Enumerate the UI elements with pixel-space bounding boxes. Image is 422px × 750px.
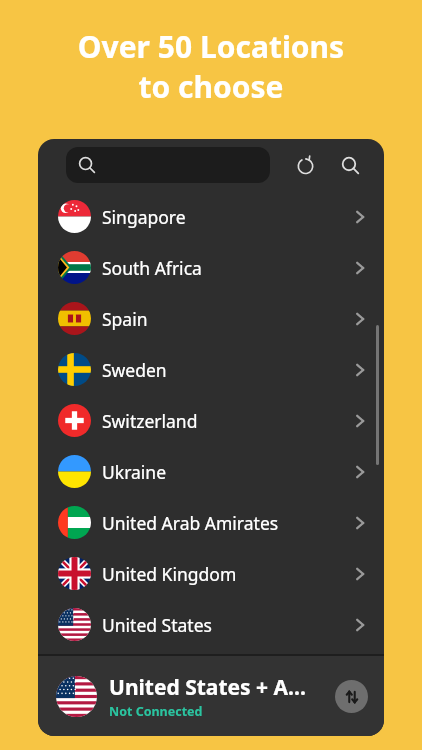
button[interactable]: Singapore <box>38 191 384 242</box>
staticText: United Arab Amirates <box>102 511 350 535</box>
button[interactable]: United Arab Amirates <box>38 497 384 548</box>
button[interactable]: Spain <box>38 293 384 344</box>
button[interactable]: Sweden <box>38 344 384 395</box>
button[interactable] <box>66 147 270 183</box>
button[interactable]: United Kingdom <box>38 548 384 599</box>
button[interactable]: United States + A... <box>38 656 384 736</box>
staticText: South Africa <box>102 256 350 280</box>
staticText: Singapore <box>102 205 350 229</box>
button[interactable]: Ukraine <box>38 446 384 497</box>
staticText: Switzerland <box>102 409 350 433</box>
staticText: Over 50 Locations to choose <box>20 26 402 107</box>
staticText: United Kingdom <box>102 562 350 586</box>
button[interactable]: Refresh <box>288 148 322 182</box>
button[interactable]: United States <box>38 599 384 650</box>
staticText: Ukraine <box>102 460 350 484</box>
button[interactable]: Switch connection <box>335 680 368 713</box>
button[interactable]: Switzerland <box>38 395 384 446</box>
staticText: Sweden <box>102 358 350 382</box>
staticText: United States + A... <box>109 673 306 702</box>
staticText: Spain <box>102 307 350 331</box>
button[interactable]: South Africa <box>38 242 384 293</box>
staticText: Not Connected <box>109 703 203 720</box>
staticText: United States <box>102 613 350 637</box>
button[interactable]: Search <box>333 148 367 182</box>
